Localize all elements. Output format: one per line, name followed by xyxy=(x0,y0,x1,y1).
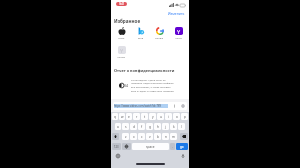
staticText: Yandex xyxy=(117,55,126,58)
staticText: https://www.videos.com/watch?id=789 xyxy=(114,104,162,108)
staticText: x xyxy=(133,135,135,139)
button[interactable]: Bing xyxy=(131,27,150,39)
button[interactable]: k xyxy=(170,123,177,130)
staticText: g xyxy=(149,125,151,129)
button[interactable]: t xyxy=(141,113,148,120)
button[interactable]: Google xyxy=(150,27,169,39)
button[interactable]: n xyxy=(162,133,169,140)
button[interactable]: j xyxy=(162,123,169,130)
button[interactable]: h xyxy=(154,123,161,130)
staticText: Google xyxy=(155,36,164,39)
button[interactable]: back xyxy=(180,133,188,140)
staticText: Отчет о конфиденциальности xyxy=(114,68,175,73)
button[interactable]: p xyxy=(181,113,188,120)
staticText: d xyxy=(133,125,135,129)
staticText: b xyxy=(157,135,159,139)
button[interactable]: g xyxy=(146,123,153,130)
staticText: Изменить xyxy=(168,11,185,16)
staticText: r xyxy=(136,115,138,119)
staticText: o xyxy=(176,115,178,119)
button[interactable]: Изменить xyxy=(168,11,185,16)
staticText: z xyxy=(125,135,127,139)
button[interactable]: x xyxy=(130,133,137,140)
staticText: 123 xyxy=(114,145,119,149)
button[interactable]: https://www.videos.com/watch?id=789 xyxy=(114,102,186,110)
button[interactable]: d xyxy=(130,123,137,130)
button[interactable]: globe xyxy=(122,143,131,150)
staticText: q xyxy=(114,115,116,119)
button[interactable]: c xyxy=(138,133,145,140)
staticText: y xyxy=(152,115,154,119)
button[interactable]: Menu xyxy=(173,104,176,108)
button[interactable]: e xyxy=(126,113,132,120)
staticText: i xyxy=(168,115,169,119)
staticText: n xyxy=(165,135,167,139)
button[interactable]: r xyxy=(133,113,140,120)
staticText: 9:41 xyxy=(119,2,125,6)
button[interactable]: b xyxy=(154,133,161,140)
button[interactable]: Y xyxy=(112,46,131,58)
staticText: p xyxy=(184,115,186,119)
staticText: u xyxy=(160,115,162,119)
button[interactable]: u xyxy=(157,113,164,120)
button[interactable]: Apple xyxy=(112,27,131,39)
staticText: h xyxy=(157,125,159,129)
staticText: t xyxy=(144,115,146,119)
button[interactable]: z xyxy=(122,133,129,140)
staticText: . xyxy=(172,145,173,149)
button[interactable]: i xyxy=(165,113,172,120)
staticText: s xyxy=(125,125,127,129)
staticText: e xyxy=(128,115,130,119)
button[interactable]: 123 xyxy=(112,143,121,150)
button[interactable]: s xyxy=(122,123,129,130)
staticText: w xyxy=(121,115,124,119)
button[interactable]: m xyxy=(170,133,177,140)
button[interactable]: q xyxy=(112,113,118,120)
button[interactable]: go xyxy=(176,143,188,150)
button[interactable]: l xyxy=(178,123,185,130)
button[interactable]: space xyxy=(132,143,169,150)
staticText: l xyxy=(181,125,182,129)
button[interactable]: f xyxy=(138,123,145,130)
staticText: Y xyxy=(120,47,124,54)
button[interactable]: v xyxy=(146,133,153,140)
staticText: Yahoo xyxy=(175,36,182,39)
staticText: Apple xyxy=(118,36,125,39)
staticText: go xyxy=(180,145,184,149)
staticText: m xyxy=(172,135,175,139)
staticText: j xyxy=(165,125,166,129)
button[interactable]: Y xyxy=(169,27,188,39)
staticText: Y xyxy=(177,28,181,35)
staticText: k xyxy=(173,125,175,129)
staticText: v xyxy=(149,135,151,139)
staticText: Bing xyxy=(138,36,144,39)
staticText: space xyxy=(146,145,155,149)
staticText: За последние 7 дней Safari не позволил с… xyxy=(131,78,176,93)
staticText: a xyxy=(117,125,119,129)
staticText: c xyxy=(141,135,143,139)
staticText: f xyxy=(141,125,143,129)
button[interactable]: w xyxy=(119,113,125,120)
button[interactable]: y xyxy=(149,113,156,120)
button[interactable]: Microphone xyxy=(180,153,185,158)
staticText: 34 xyxy=(124,83,128,88)
button[interactable]: shift xyxy=(112,133,119,140)
button[interactable]: a xyxy=(115,123,121,130)
button[interactable]: Emoji xyxy=(115,153,120,158)
button[interactable]: o xyxy=(173,113,180,120)
button[interactable]: . xyxy=(170,143,175,150)
staticText: Избранное xyxy=(114,18,141,24)
button[interactable]: Clear xyxy=(181,104,185,108)
